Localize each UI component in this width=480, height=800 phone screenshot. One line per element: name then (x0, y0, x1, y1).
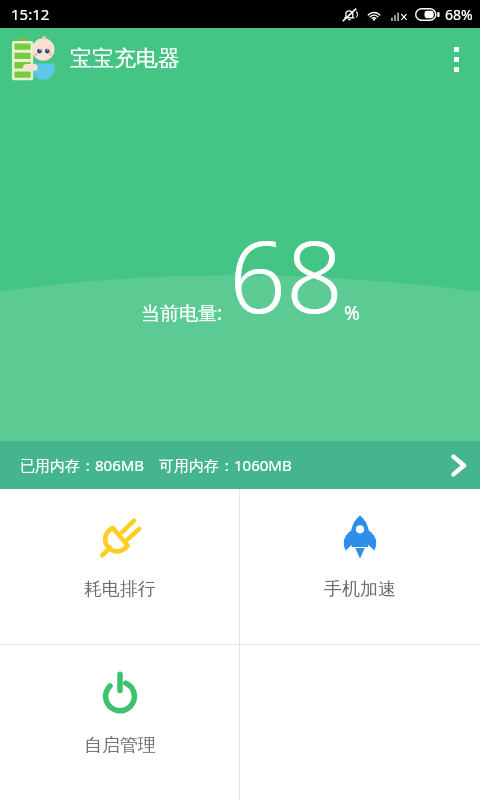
staticText: 自启管理 (84, 734, 156, 757)
button[interactable]: More options (432, 35, 480, 83)
staticText: 宝宝充电器 (70, 45, 180, 73)
button[interactable]: 手机加速 (240, 489, 480, 644)
staticText: 当前电量: (141, 300, 223, 326)
staticText: 68 (229, 206, 344, 342)
staticText: % (344, 300, 360, 326)
staticText: 已用内存：806MB (20, 455, 145, 475)
button[interactable]: 耗电排行 (0, 489, 239, 644)
button[interactable]: 自启管理 (0, 645, 239, 800)
staticText: 68% (445, 5, 473, 24)
staticText: 可用内存：1060MB (159, 455, 292, 475)
staticText: 耗电排行 (84, 578, 156, 601)
staticText: 15:12 (11, 4, 50, 24)
button[interactable]: 已用内存：806MB (0, 441, 480, 489)
staticText: 手机加速 (324, 578, 396, 601)
